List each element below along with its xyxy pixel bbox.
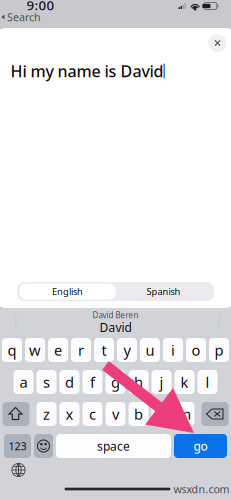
staticText: z xyxy=(43,404,50,424)
staticText: u xyxy=(145,340,154,360)
button[interactable]: i xyxy=(163,338,183,362)
button[interactable]: f xyxy=(82,370,102,394)
staticText: 123 xyxy=(8,439,26,453)
button[interactable]: g xyxy=(105,370,125,394)
staticText: s xyxy=(43,372,50,392)
button[interactable]: Delete xyxy=(201,402,228,426)
button[interactable]: l xyxy=(197,370,217,394)
button[interactable]: x xyxy=(59,402,79,426)
button[interactable]: space xyxy=(56,434,171,458)
button[interactable]: e xyxy=(48,338,68,362)
button[interactable]: o xyxy=(186,338,206,362)
button[interactable]: w xyxy=(25,338,45,362)
staticText: o xyxy=(191,340,200,360)
staticText: go xyxy=(193,438,207,454)
button[interactable]: v xyxy=(105,402,125,426)
button[interactable]: d xyxy=(59,370,79,394)
staticText: 9:00 xyxy=(26,0,54,14)
staticText: k xyxy=(180,372,188,392)
button[interactable]: n xyxy=(151,402,171,426)
staticText: space xyxy=(97,438,130,454)
button[interactable]: a xyxy=(13,370,33,394)
staticText: b xyxy=(134,404,143,424)
staticText: d xyxy=(65,372,74,392)
staticText: English xyxy=(52,285,83,298)
staticText: t xyxy=(101,340,106,360)
staticText: David xyxy=(99,319,131,335)
staticText: j xyxy=(159,372,163,392)
button[interactable]: Shift xyxy=(2,402,29,426)
staticText: w xyxy=(29,340,41,360)
button[interactable]: s xyxy=(36,370,56,394)
staticText: Search xyxy=(7,10,41,24)
staticText: e xyxy=(54,340,62,360)
staticText: h xyxy=(134,372,143,392)
staticText: y xyxy=(123,340,130,360)
button[interactable]: Search xyxy=(0,12,41,22)
button[interactable]: y xyxy=(117,338,137,362)
button[interactable]: Emoji xyxy=(34,434,53,458)
button[interactable]: c xyxy=(82,402,102,426)
staticText: v xyxy=(112,404,119,424)
button[interactable]: Close xyxy=(208,34,226,52)
staticText: f xyxy=(90,372,95,392)
button[interactable]: t xyxy=(94,338,114,362)
button[interactable]: 123 xyxy=(4,434,31,458)
staticText: q xyxy=(7,340,16,360)
button[interactable]: r xyxy=(71,338,91,362)
button[interactable]: j xyxy=(151,370,171,394)
staticText: m xyxy=(177,404,191,424)
staticText: l xyxy=(205,372,209,392)
button[interactable]: m xyxy=(174,402,194,426)
staticText: Hi my name is David xyxy=(10,60,163,82)
button[interactable]: q xyxy=(2,338,22,362)
staticText: g xyxy=(111,372,120,392)
button[interactable]: z xyxy=(36,402,56,426)
staticText: David Beren xyxy=(92,310,138,320)
button[interactable]: h xyxy=(128,370,148,394)
button[interactable]: u xyxy=(140,338,160,362)
staticText: c xyxy=(89,404,96,424)
button[interactable]: go xyxy=(174,434,227,458)
button[interactable]: English xyxy=(19,283,115,299)
staticText: a xyxy=(19,372,27,392)
button[interactable]: David Beren xyxy=(80,310,150,334)
staticText: wsxdn.com xyxy=(173,482,229,496)
button[interactable]: Spanish xyxy=(115,283,211,299)
button[interactable]: k xyxy=(174,370,194,394)
button[interactable]: Next keyboard xyxy=(11,463,25,477)
staticText: r xyxy=(78,340,84,360)
button[interactable]: p xyxy=(209,338,229,362)
staticText: i xyxy=(171,340,175,360)
button[interactable]: b xyxy=(128,402,148,426)
staticText: p xyxy=(214,340,223,360)
staticText: x xyxy=(65,404,73,424)
staticText: Spanish xyxy=(146,285,180,298)
